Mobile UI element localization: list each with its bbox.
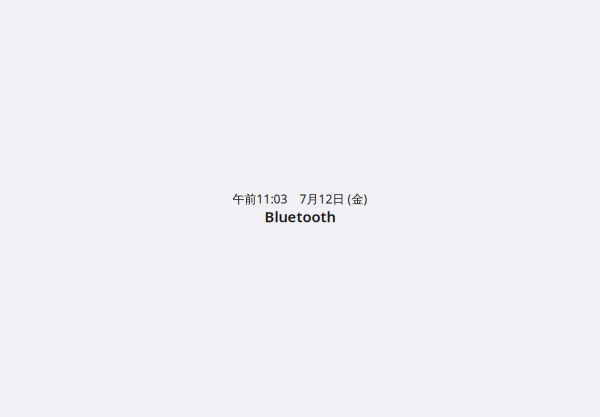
staticText: Bluetooth <box>264 207 335 226</box>
staticText: 午前11:03 7月12日 (金) <box>232 191 367 207</box>
